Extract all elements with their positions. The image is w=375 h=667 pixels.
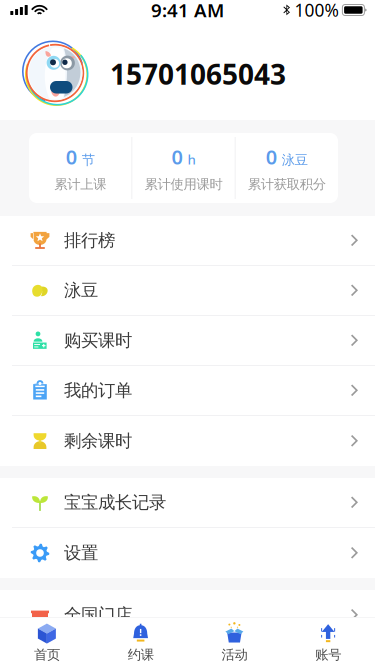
staticText: 活动 xyxy=(221,647,247,663)
staticText: 100% xyxy=(294,0,338,21)
button[interactable]: 全国门店 xyxy=(0,590,375,640)
staticText: 0 xyxy=(266,143,277,170)
staticText: 宝宝成长记录 xyxy=(64,492,166,513)
button[interactable]: 排行榜 xyxy=(0,216,375,266)
button[interactable]: 我的订单 xyxy=(0,366,375,416)
staticText: 剩余课时 xyxy=(64,430,132,452)
staticText: 约课 xyxy=(128,647,154,663)
staticText: 排行榜 xyxy=(64,230,115,251)
staticText: 泳豆 xyxy=(282,152,308,168)
staticText: 账号 xyxy=(315,647,341,663)
button[interactable]: 剩余课时 xyxy=(0,416,375,466)
staticText: 全国门店 xyxy=(64,604,132,626)
staticText: 15701065043 xyxy=(110,55,286,93)
staticText: 累计获取积分 xyxy=(248,176,326,192)
button[interactable]: 设置 xyxy=(0,528,375,578)
staticText: 9:41 AM xyxy=(151,0,224,22)
button[interactable]: 账号 xyxy=(281,618,375,667)
button[interactable]: 宝宝成长记录 xyxy=(0,478,375,528)
staticText: 累计上课 xyxy=(54,176,106,192)
button[interactable]: 约课 xyxy=(94,618,188,667)
staticText: 0 xyxy=(66,143,77,170)
button[interactable]: 首页 xyxy=(0,618,94,667)
staticText: 节 xyxy=(82,152,95,168)
staticText: 我的订单 xyxy=(64,380,132,401)
staticText: 累计使用课时 xyxy=(144,176,222,192)
staticText: 设置 xyxy=(64,542,98,564)
staticText: 购买课时 xyxy=(64,330,132,351)
button[interactable]: 泳豆 xyxy=(0,266,375,316)
staticText: 泳豆 xyxy=(64,280,98,301)
button[interactable]: 购买课时 xyxy=(0,316,375,366)
staticText: 0 xyxy=(171,143,182,170)
button[interactable]: 活动 xyxy=(187,618,281,667)
staticText: 首页 xyxy=(34,647,60,663)
staticText: h xyxy=(187,150,195,168)
